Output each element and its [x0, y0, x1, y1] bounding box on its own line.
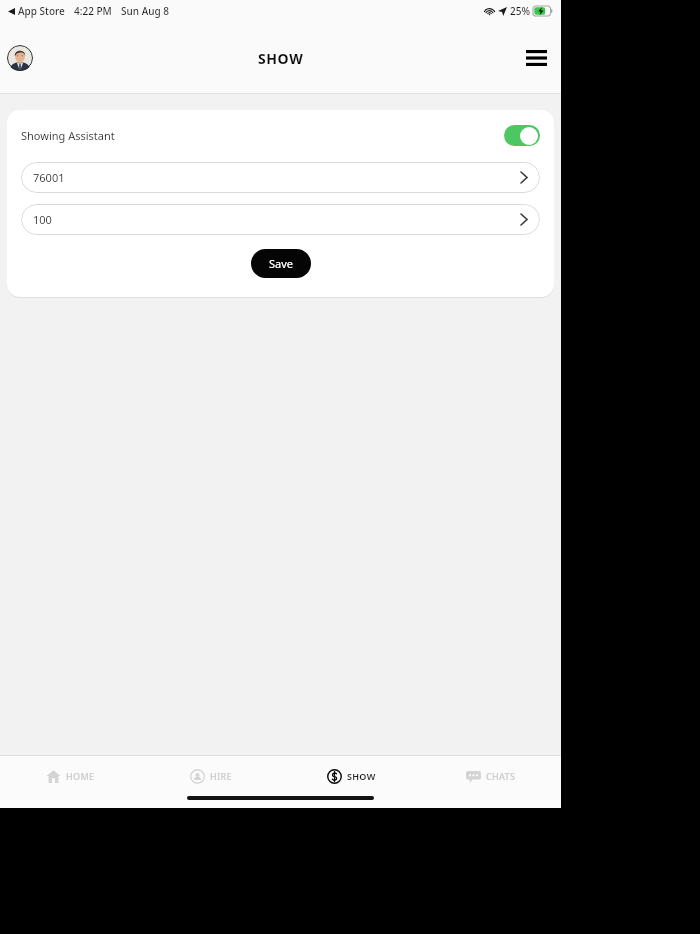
- staticText: Showing Assistant: [21, 128, 115, 143]
- button[interactable]: Save: [251, 249, 311, 278]
- button[interactable]: Showing Assistant toggle: [504, 125, 540, 146]
- staticText: SHOW: [347, 770, 376, 782]
- staticText: HOME: [66, 770, 95, 782]
- staticText: 4:22 PM: [74, 4, 112, 18]
- staticText: SHOW: [258, 49, 304, 68]
- staticText: CHATS: [486, 770, 516, 782]
- staticText: App Store: [18, 4, 65, 18]
- button[interactable]: HIRE: [141, 756, 281, 796]
- button[interactable]: Menu: [521, 43, 551, 73]
- button[interactable]: Profile: [7, 45, 33, 71]
- staticText: HIRE: [210, 770, 232, 782]
- staticText: 100: [33, 212, 52, 227]
- button[interactable]: Showing Assistant: [21, 110, 540, 160]
- staticText: 25%: [510, 4, 530, 18]
- staticText: Sun Aug 8: [121, 4, 169, 18]
- staticText: 76001: [33, 170, 65, 185]
- button[interactable]: HOME: [0, 756, 141, 796]
- button[interactable]: CHATS: [421, 756, 561, 796]
- button[interactable]: 76001: [21, 162, 540, 193]
- button[interactable]: 100: [21, 204, 540, 235]
- staticText: Save: [269, 256, 294, 271]
- button[interactable]: SHOW: [281, 756, 421, 796]
